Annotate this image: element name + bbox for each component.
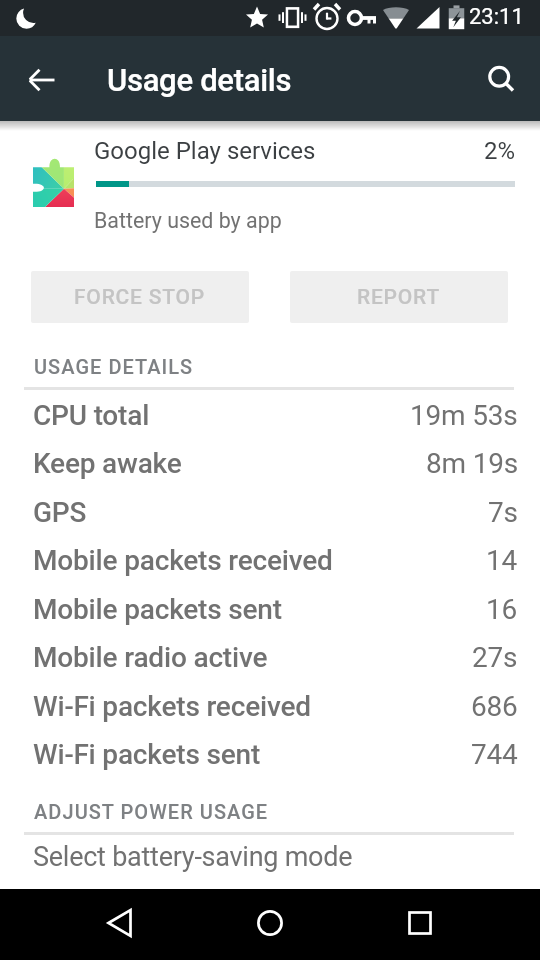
button[interactable]: FORCE STOP: [31, 271, 249, 323]
button[interactable]: CPU total: [33, 391, 518, 440]
staticText: Mobile packets sent: [33, 593, 486, 626]
button[interactable]: REPORT: [290, 271, 508, 323]
staticText: FORCE STOP: [74, 285, 206, 310]
staticText: Mobile packets received: [33, 544, 486, 577]
staticText: 8m 19s: [426, 447, 518, 480]
button[interactable]: Mobile radio active: [33, 633, 518, 682]
staticText: 14: [486, 544, 518, 577]
staticText: 27s: [472, 641, 518, 674]
staticText: ADJUST POWER USAGE: [34, 800, 269, 823]
staticText: 23:11: [469, 4, 524, 30]
staticText: REPORT: [357, 285, 441, 310]
staticText: 19m 53s: [410, 399, 518, 432]
staticText: CPU total: [33, 399, 410, 432]
button[interactable]: GPS: [33, 488, 518, 537]
staticText: 7s: [488, 496, 518, 529]
button[interactable]: Mobile packets sent: [33, 585, 518, 634]
button[interactable]: Recent apps: [396, 899, 444, 947]
staticText: Wi-Fi packets received: [33, 690, 471, 723]
button[interactable]: Wi-Fi packets sent: [33, 730, 518, 779]
staticText: Keep awake: [33, 447, 426, 480]
staticText: Select battery-saving mode: [33, 841, 353, 873]
button[interactable]: Wi-Fi packets received: [33, 682, 518, 731]
button[interactable]: Back: [18, 56, 66, 104]
button[interactable]: Mobile packets received: [33, 536, 518, 585]
button[interactable]: Search: [478, 56, 526, 104]
staticText: USAGE DETAILS: [34, 355, 194, 378]
button[interactable]: Home: [246, 899, 294, 947]
staticText: Wi-Fi packets sent: [33, 738, 471, 771]
staticText: 686: [471, 690, 518, 723]
button[interactable]: Keep awake: [33, 439, 518, 488]
staticText: 2%: [484, 137, 516, 165]
staticText: 16: [486, 593, 518, 626]
staticText: Battery used by app: [94, 208, 282, 233]
staticText: GPS: [33, 496, 488, 529]
staticText: Google Play services: [94, 137, 316, 165]
staticText: Usage details: [107, 62, 292, 98]
staticText: 744: [471, 738, 518, 771]
button[interactable]: Back: [96, 899, 144, 947]
staticText: Mobile radio active: [33, 641, 472, 674]
button[interactable]: Select battery-saving mode: [33, 834, 518, 880]
